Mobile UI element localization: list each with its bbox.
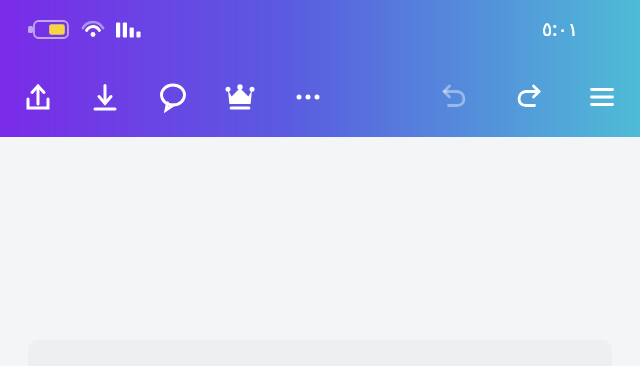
button[interactable]: Download (77, 69, 133, 125)
button[interactable]: Redo (500, 69, 556, 125)
button[interactable]: Undo (427, 69, 483, 125)
button[interactable]: Premium (212, 69, 268, 125)
staticText: ٥:٠١ (542, 16, 578, 42)
button[interactable]: Comments (145, 69, 201, 125)
button[interactable]: More options (280, 69, 336, 125)
button[interactable]: Share (10, 69, 66, 125)
button[interactable]: Menu (574, 69, 630, 125)
